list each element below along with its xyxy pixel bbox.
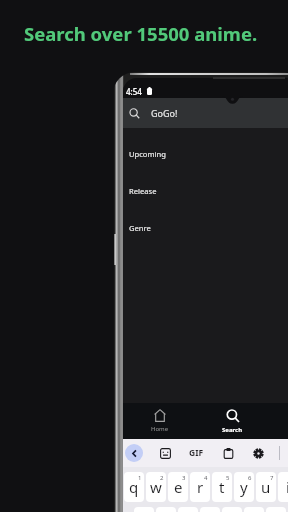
button[interactable]: j: [266, 507, 286, 512]
button[interactable]: Settings: [248, 439, 268, 467]
button[interactable]: GIF: [186, 439, 206, 467]
staticText: t: [219, 477, 225, 497]
staticText: q: [129, 477, 139, 497]
button[interactable]: w: [146, 472, 166, 502]
button[interactable]: i: [278, 472, 288, 502]
staticText: 2: [160, 474, 164, 482]
staticText: Search: [222, 426, 243, 434]
staticText: Genre: [129, 223, 151, 233]
button[interactable]: Home: [123, 403, 196, 439]
staticText: i: [286, 477, 288, 497]
staticText: 1: [138, 474, 142, 482]
staticText: 6: [248, 474, 252, 482]
button[interactable]: Clipboard: [218, 439, 238, 467]
staticText: Upcoming: [129, 149, 166, 159]
staticText: Release: [129, 186, 157, 196]
button[interactable]: q: [124, 472, 144, 502]
button[interactable]: Genre: [123, 209, 288, 246]
button[interactable]: Back: [125, 444, 143, 462]
staticText: 4:54: [126, 86, 142, 97]
staticText: u: [261, 477, 271, 497]
button[interactable]: h: [244, 507, 264, 512]
staticText: 3: [182, 474, 186, 482]
staticText: GIF: [189, 447, 204, 459]
staticText: 5: [226, 474, 230, 482]
button[interactable]: y: [234, 472, 254, 502]
button[interactable]: u: [256, 472, 276, 502]
staticText: r: [197, 477, 204, 497]
button[interactable]: d: [178, 507, 198, 512]
staticText: GoGo!: [151, 107, 178, 119]
staticText: 7: [270, 474, 274, 482]
button[interactable]: t: [212, 472, 232, 502]
button[interactable]: GoGo!: [123, 98, 288, 128]
button[interactable]: g: [222, 507, 242, 512]
button[interactable]: Upcoming: [123, 135, 288, 172]
staticText: y: [240, 477, 248, 497]
button[interactable]: f: [200, 507, 220, 512]
staticText: 4: [204, 474, 208, 482]
staticText: e: [174, 477, 183, 497]
staticText: Search over 15500 anime.: [24, 21, 258, 46]
staticText: w: [150, 477, 162, 497]
button[interactable]: Emoji: [155, 439, 175, 467]
button[interactable]: a: [134, 507, 154, 512]
button[interactable]: Search: [196, 403, 269, 439]
button[interactable]: e: [168, 472, 188, 502]
staticText: Home: [151, 425, 169, 433]
button[interactable]: Release: [123, 172, 288, 209]
button[interactable]: s: [156, 507, 176, 512]
button[interactable]: r: [190, 472, 210, 502]
